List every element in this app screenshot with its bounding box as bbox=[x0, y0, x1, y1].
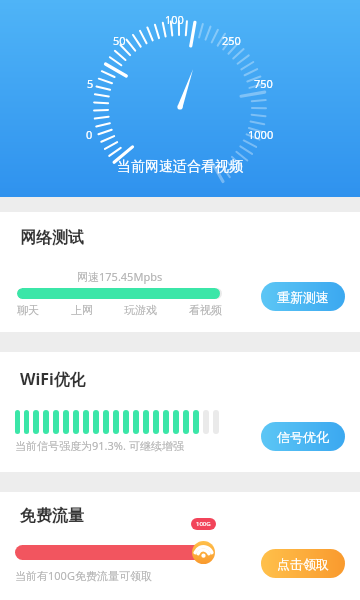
staticText: 点击领取 bbox=[277, 556, 329, 572]
staticText: 当前有100G免费流量可领取 bbox=[15, 568, 152, 583]
staticText: 100 bbox=[165, 12, 184, 27]
staticText: 750 bbox=[254, 76, 273, 91]
button[interactable]: 点击领取 bbox=[261, 549, 345, 578]
staticText: 上网 bbox=[71, 303, 93, 317]
button[interactable]: 重新测速 bbox=[261, 282, 345, 311]
staticText: 网络测试 bbox=[20, 228, 84, 248]
other: WiFi 流量 bbox=[192, 541, 215, 564]
staticText: 网速175.45Mpbs bbox=[77, 269, 163, 284]
staticText: 看视频 bbox=[189, 303, 222, 317]
staticText: WiFi优化 bbox=[20, 368, 86, 390]
staticText: 5 bbox=[87, 76, 94, 91]
staticText: 当前信号强度为91.3%. 可继续增强 bbox=[15, 438, 184, 453]
staticText: 50 bbox=[113, 33, 126, 48]
staticText: 信号优化 bbox=[277, 429, 329, 445]
staticText: 玩游戏 bbox=[124, 303, 157, 317]
button[interactable]: 信号优化 bbox=[261, 422, 345, 451]
staticText: 重新测速 bbox=[277, 289, 329, 305]
staticText: 100G bbox=[196, 520, 211, 528]
staticText: 0 bbox=[86, 127, 93, 142]
staticText: 当前网速适合看视频 bbox=[117, 158, 243, 176]
staticText: 免费流量 bbox=[20, 506, 84, 526]
staticText: 250 bbox=[222, 33, 241, 48]
staticText: 1000 bbox=[248, 127, 274, 142]
staticText: 聊天 bbox=[17, 303, 39, 317]
